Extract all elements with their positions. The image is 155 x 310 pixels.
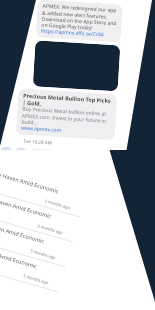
staticText: 5 months ago [0, 244, 49, 285]
staticText: https://apmex.affx.se/Cr84 [41, 28, 104, 38]
staticText: APMEX: We redesigned our app & added new… [41, 3, 118, 32]
staticText: Buy Precious Metal bullion online at APM… [21, 106, 111, 130]
staticText: Precious Metal Bullion Top Picks | Gold, [22, 92, 112, 111]
staticText: 5 months ago [0, 169, 71, 210]
staticText: Gold is Seen As a Safe Haven Amid Econom… [0, 156, 74, 205]
staticText: Gold is Seen As a Safe Haven Amid Econom… [0, 231, 53, 280]
staticText: www.apmex.com [21, 125, 62, 134]
staticText: Tue 10:28 AM [23, 138, 52, 145]
staticText: 5 months ago [0, 194, 63, 235]
staticText: 5 months ago [0, 219, 56, 260]
staticText: Gold is Seen As a Safe Haven Amid Econom… [0, 181, 67, 230]
staticText: Gold is Seen As a Safe Haven Amid Econom… [0, 206, 60, 255]
